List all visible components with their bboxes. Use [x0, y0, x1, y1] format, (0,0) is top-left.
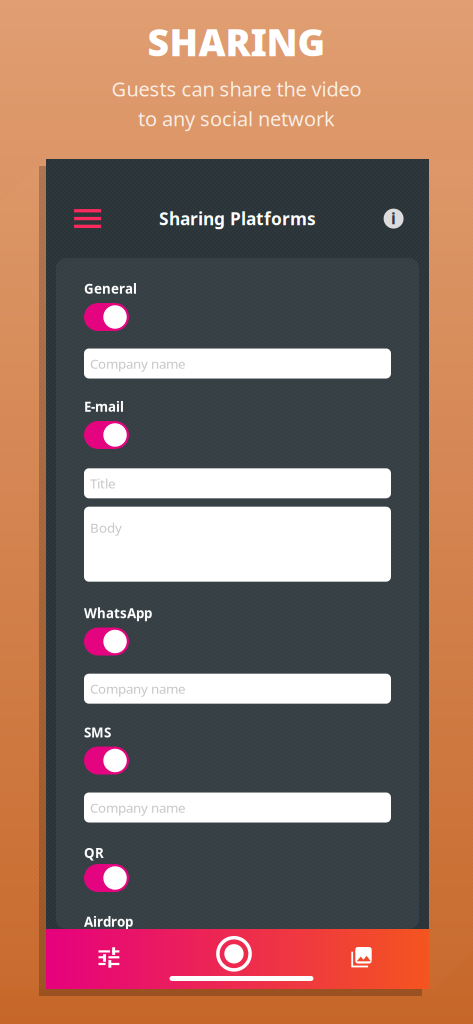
button[interactable]: Adjustments: [71, 934, 147, 980]
staticText: SMS: [84, 723, 111, 741]
button[interactable]: Company name: [84, 674, 391, 704]
button[interactable]: Toggle: [84, 746, 129, 774]
button[interactable]: Toggle: [84, 627, 129, 655]
button[interactable]: Information: [371, 197, 417, 241]
staticText: Airdrop: [84, 913, 133, 930]
button[interactable]: Toggle: [84, 864, 129, 892]
button[interactable]: Record: [196, 931, 272, 977]
staticText: Company name: [90, 799, 186, 816]
staticText: WhatsApp: [84, 604, 152, 622]
staticText: Title: [90, 474, 116, 492]
staticText: Company name: [90, 355, 186, 372]
staticText: E-mail: [84, 398, 124, 415]
button[interactable]: Company name: [84, 792, 391, 822]
button[interactable]: Company name: [84, 348, 391, 378]
staticText: SHARING: [147, 17, 325, 67]
button[interactable]: Library: [324, 934, 400, 980]
button[interactable]: Toggle: [84, 421, 129, 449]
button[interactable]: Menu: [62, 197, 114, 241]
staticText: QR: [84, 844, 104, 862]
staticText: General: [84, 280, 137, 297]
button[interactable]: Toggle: [84, 303, 129, 331]
button[interactable]: Body: [84, 507, 391, 582]
staticText: Guests can share the video: [111, 76, 361, 102]
staticText: Sharing Platforms: [159, 207, 316, 230]
staticText: i: [391, 207, 396, 229]
staticText: to any social network: [138, 105, 335, 132]
staticText: Company name: [90, 680, 186, 697]
staticText: Body: [90, 519, 122, 536]
button[interactable]: Title: [84, 468, 391, 498]
